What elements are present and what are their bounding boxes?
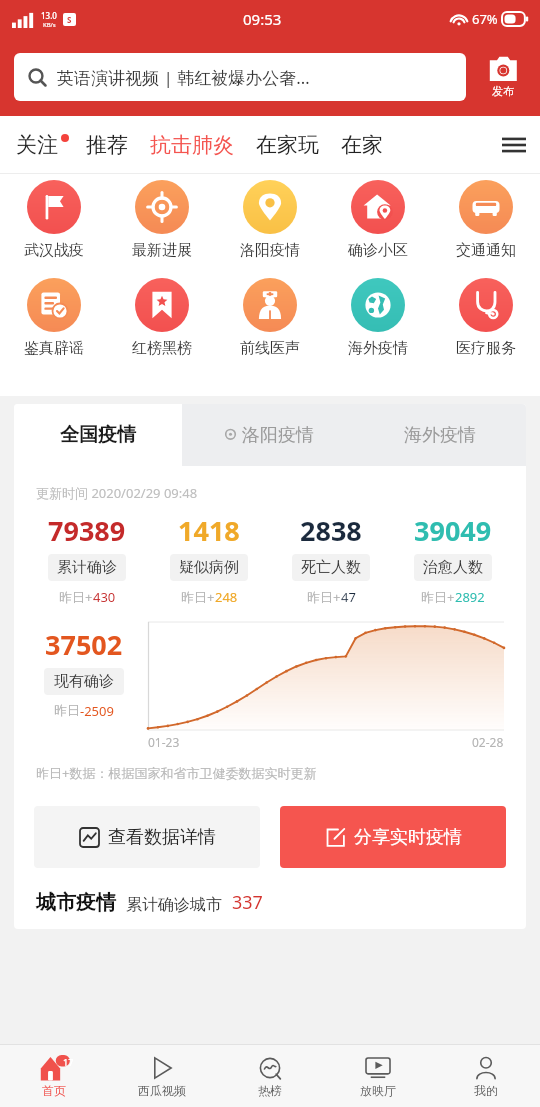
button[interactable]: 全国疫情: [14, 404, 182, 466]
button[interactable]: 抗击肺炎: [150, 132, 234, 158]
staticText: 关注: [16, 132, 58, 158]
button[interactable]: 海外疫情: [354, 404, 526, 466]
staticText: 昨日+: [181, 588, 215, 606]
staticText: 死亡人数: [301, 558, 361, 577]
staticText: 39049: [414, 512, 492, 549]
staticText: 09:53: [243, 9, 282, 29]
staticText: KB/s: [43, 21, 56, 29]
staticText: 现有确诊: [54, 672, 114, 691]
staticText: 13.0: [41, 10, 57, 21]
staticText: 79389: [48, 512, 126, 549]
staticText: 前线医声: [240, 339, 300, 358]
staticText: 疑似病例: [179, 558, 239, 577]
staticText: 昨日+: [307, 588, 341, 606]
button[interactable]: 武汉战疫: [0, 180, 108, 260]
staticText: 67%: [472, 10, 498, 28]
button[interactable]: 海外疫情: [324, 278, 432, 358]
button[interactable]: 英语演讲视频 | 韩红被爆办公奢…: [14, 53, 466, 101]
staticText: 首页: [42, 1083, 66, 1098]
staticText: 昨日+数据：根据国家和省市卫健委数据实时更新: [36, 764, 317, 782]
button[interactable]: 分享实时疫情: [280, 806, 506, 868]
staticText: 西瓜视频: [138, 1083, 186, 1098]
staticText: 最新进展: [132, 241, 192, 260]
staticText: 查看数据详情: [108, 826, 216, 849]
button[interactable]: 发布: [476, 56, 530, 98]
staticText: 英语演讲视频 | 韩红被爆办公奢…: [57, 66, 310, 89]
staticText: 海外疫情: [348, 339, 408, 358]
button[interactable]: 在家玩: [256, 132, 319, 158]
staticText: 洛阳疫情: [240, 241, 300, 260]
button[interactable]: 前线医声: [216, 278, 324, 358]
staticText: 02-28: [472, 734, 504, 750]
staticText: 医疗服务: [456, 339, 516, 358]
staticText: 47: [341, 588, 356, 606]
staticText: 在家玩: [256, 132, 319, 158]
button[interactable]: 放映厅: [324, 1045, 432, 1107]
button[interactable]: 菜单: [488, 116, 540, 174]
staticText: 鉴真辟谣: [24, 339, 84, 358]
staticText: 累计确诊: [57, 558, 117, 577]
button[interactable]: 红榜黑榜: [108, 278, 216, 358]
button[interactable]: 最新进展: [108, 180, 216, 260]
staticText: 抗击肺炎: [150, 132, 234, 158]
staticText: 热榜: [258, 1083, 282, 1098]
staticText: 推荐: [86, 132, 128, 158]
button[interactable]: 西瓜视频: [108, 1045, 216, 1107]
staticText: 我的: [474, 1083, 498, 1098]
staticText: 37502: [45, 626, 123, 663]
staticText: 在家: [341, 132, 383, 158]
button[interactable]: 推荐: [86, 132, 128, 158]
staticText: 交通通知: [456, 241, 516, 260]
staticText: 2892: [455, 588, 485, 606]
staticText: 发布: [492, 84, 514, 98]
staticText: -2509: [80, 702, 114, 720]
staticText: 武汉战疫: [24, 241, 84, 260]
staticText: 治愈人数: [423, 558, 483, 577]
staticText: 确诊小区: [348, 241, 408, 260]
staticText: 昨日+: [421, 588, 455, 606]
staticText: 城市疫情: [36, 890, 116, 915]
staticText: 放映厅: [360, 1083, 396, 1098]
button[interactable]: 关注: [16, 132, 64, 158]
staticText: 17: [63, 1056, 74, 1068]
staticText: 2838: [300, 512, 362, 549]
button[interactable]: 查看数据详情: [34, 806, 260, 868]
staticText: 430: [93, 588, 116, 606]
staticText: 红榜黑榜: [132, 339, 192, 358]
staticText: 昨日: [54, 702, 80, 718]
button[interactable]: 交通通知: [432, 180, 540, 260]
button[interactable]: 17: [0, 1045, 108, 1107]
button[interactable]: 医疗服务: [432, 278, 540, 358]
button[interactable]: 洛阳疫情: [182, 404, 354, 466]
button[interactable]: 在家: [341, 132, 383, 158]
button[interactable]: 洛阳疫情: [216, 180, 324, 260]
button[interactable]: 鉴真辟谣: [0, 278, 108, 358]
button[interactable]: 热榜: [216, 1045, 324, 1107]
staticText: S: [67, 14, 72, 25]
staticText: 累计确诊城市: [126, 895, 222, 915]
staticText: 更新时间 2020/02/29 09:48: [36, 484, 198, 502]
staticText: 分享实时疫情: [354, 826, 462, 849]
button[interactable]: 我的: [432, 1045, 540, 1107]
staticText: 昨日+: [59, 588, 93, 606]
staticText: 337: [232, 890, 263, 915]
staticText: 1418: [178, 512, 240, 549]
staticText: 海外疫情: [404, 424, 476, 447]
staticText: 洛阳疫情: [242, 424, 314, 447]
button[interactable]: 确诊小区: [324, 180, 432, 260]
staticText: 全国疫情: [60, 423, 136, 447]
staticText: 248: [215, 588, 238, 606]
staticText: 01-23: [148, 734, 180, 750]
